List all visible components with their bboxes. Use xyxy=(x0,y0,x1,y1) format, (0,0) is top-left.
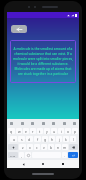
staticText: q xyxy=(10,129,13,134)
staticText: b xyxy=(50,145,53,150)
staticText: h xyxy=(51,137,54,142)
button[interactable]: Keyboard tool 2 xyxy=(30,121,35,126)
button[interactable]: p xyxy=(72,128,78,134)
staticText: r xyxy=(32,129,34,134)
staticText: f xyxy=(37,137,39,142)
button[interactable]: n xyxy=(55,144,61,150)
button[interactable]: v xyxy=(41,144,47,150)
button[interactable]: Backspace xyxy=(69,144,78,150)
button[interactable]: u xyxy=(51,128,57,134)
staticText: x xyxy=(29,145,31,150)
staticText: c xyxy=(36,145,38,150)
staticText: ?123 xyxy=(10,154,16,157)
staticText: z xyxy=(22,145,24,150)
button[interactable]: m xyxy=(62,144,68,150)
button[interactable]: c xyxy=(34,144,40,150)
staticText: o xyxy=(67,129,70,134)
staticText: a xyxy=(13,137,15,142)
button[interactable]: t xyxy=(37,128,43,134)
staticText: y xyxy=(46,129,48,134)
staticText: m xyxy=(63,145,67,150)
button[interactable]: w xyxy=(16,128,22,134)
button[interactable]: h xyxy=(49,136,55,142)
staticText: w xyxy=(18,129,21,134)
staticText: . xyxy=(64,153,65,158)
button[interactable]: . xyxy=(62,152,67,158)
staticText: u xyxy=(53,129,56,134)
staticText: t xyxy=(39,129,41,134)
button[interactable]: , xyxy=(19,152,24,158)
button[interactable]: j xyxy=(56,136,62,142)
button[interactable]: q xyxy=(8,128,15,134)
button[interactable]: b xyxy=(48,144,54,150)
staticText: A molecule is the smallest amount of a c… xyxy=(12,47,74,76)
button[interactable]: i xyxy=(58,128,64,134)
staticText: p xyxy=(74,129,77,134)
button[interactable]: e xyxy=(23,128,29,134)
button[interactable]: Keyboard tool 6 xyxy=(72,121,77,126)
staticText: d xyxy=(28,137,31,142)
staticText: l xyxy=(73,137,74,142)
button[interactable]: Enter xyxy=(68,152,78,158)
button[interactable]: Keyboard tool 4 xyxy=(51,121,56,126)
button[interactable]: Symbols xyxy=(8,152,18,158)
button[interactable]: Back xyxy=(11,25,27,33)
button[interactable]: y xyxy=(44,128,50,134)
button[interactable]: Keyboard tool 3 xyxy=(41,121,46,126)
button[interactable]: d xyxy=(26,136,33,142)
button[interactable]: a xyxy=(10,136,17,142)
button[interactable]: Keyboard tool 0 xyxy=(9,121,14,126)
button[interactable]: f xyxy=(34,136,41,142)
button[interactable]: Shift xyxy=(8,144,18,150)
button[interactable]: o xyxy=(65,128,71,134)
button[interactable]: k xyxy=(63,136,69,142)
button[interactable]: Home xyxy=(39,160,47,168)
staticText: i xyxy=(61,129,62,134)
staticText: , xyxy=(21,153,22,158)
button[interactable]: Recent apps xyxy=(59,160,67,168)
staticText: e xyxy=(25,129,27,134)
button[interactable]: A molecule is the smallest amount of a c… xyxy=(10,40,76,83)
button[interactable]: g xyxy=(42,136,48,142)
button[interactable]: z xyxy=(19,144,26,150)
button[interactable]: s xyxy=(18,136,25,142)
button[interactable]: Emoji xyxy=(25,152,31,158)
staticText: s xyxy=(21,137,23,142)
staticText: v xyxy=(43,145,45,150)
button[interactable]: Keyboard tool 1 xyxy=(20,121,25,126)
button[interactable]: x xyxy=(27,144,33,150)
staticText: g xyxy=(44,137,47,142)
staticText: n xyxy=(57,145,60,150)
staticText: k xyxy=(65,137,67,142)
staticText: j xyxy=(59,137,60,142)
button[interactable]: Back xyxy=(19,160,27,168)
button[interactable]: l xyxy=(70,136,76,142)
button[interactable]: r xyxy=(30,128,36,134)
button[interactable]: Keyboard tool 5 xyxy=(62,121,67,126)
